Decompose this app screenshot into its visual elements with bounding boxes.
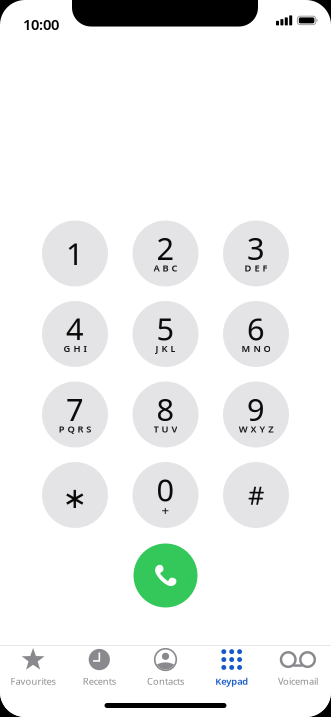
staticText: Favourites (11, 675, 56, 687)
staticText: H (73, 342, 80, 355)
button[interactable]: 8 (120, 374, 210, 454)
staticText: 7 (66, 389, 84, 429)
staticText: F (262, 262, 267, 274)
staticText: Keypad (215, 675, 248, 687)
staticText: T (154, 423, 159, 435)
staticText: J (156, 342, 159, 355)
button[interactable]: 7 (30, 374, 120, 454)
button[interactable]: ∗ (30, 455, 120, 535)
staticText: 1 (66, 233, 84, 274)
staticText: + (161, 501, 169, 519)
staticText: R (77, 423, 83, 435)
button[interactable]: 5 (120, 294, 210, 374)
staticText: K (161, 342, 167, 355)
button[interactable]: 1 (30, 213, 120, 293)
staticText: 9 (247, 389, 265, 429)
staticText: G (64, 342, 71, 355)
staticText: C (171, 262, 177, 274)
staticText: 2 (156, 228, 174, 268)
staticText: O (263, 342, 270, 355)
button[interactable]: 6 (211, 294, 301, 374)
staticText: 4 (66, 308, 84, 349)
staticText: X (251, 423, 257, 435)
staticText: P (59, 423, 65, 435)
button[interactable]: Favourites (0, 647, 66, 687)
staticText: V (171, 423, 177, 435)
button[interactable]: 9 (211, 374, 301, 454)
staticText: 6 (247, 308, 265, 349)
button[interactable]: 2 (120, 213, 210, 293)
staticText: Voicemail (278, 675, 318, 687)
staticText: U (161, 423, 168, 435)
staticText: Q (67, 423, 74, 435)
staticText: I (83, 342, 86, 355)
staticText: D (245, 262, 252, 274)
staticText: Recents (83, 675, 116, 687)
staticText: M (242, 342, 251, 355)
staticText: 10:00 (23, 14, 59, 34)
staticText: Contacts (147, 675, 184, 687)
staticText: E (254, 262, 259, 274)
button[interactable]: # (211, 455, 301, 535)
staticText: 5 (156, 308, 174, 349)
staticText: ∗ (62, 481, 87, 515)
staticText: Z (268, 423, 273, 435)
staticText: # (248, 478, 264, 512)
button[interactable]: 0 (120, 455, 210, 535)
button[interactable]: Recents (66, 647, 132, 687)
button[interactable]: Call (120, 540, 210, 610)
staticText: 8 (156, 389, 174, 429)
staticText: L (170, 342, 175, 355)
staticText: N (253, 342, 260, 355)
button[interactable]: Contacts (132, 647, 199, 687)
button[interactable]: Voicemail (265, 647, 331, 687)
button[interactable]: Keypad (199, 647, 265, 687)
button[interactable]: 3 (211, 213, 301, 293)
staticText: 0 (156, 469, 174, 510)
staticText: 3 (247, 228, 265, 268)
staticText: W (239, 423, 248, 435)
staticText: S (86, 423, 91, 435)
staticText: Y (259, 423, 265, 435)
staticText: B (162, 262, 168, 274)
button[interactable]: 4 (30, 294, 120, 374)
staticText: A (154, 262, 160, 274)
